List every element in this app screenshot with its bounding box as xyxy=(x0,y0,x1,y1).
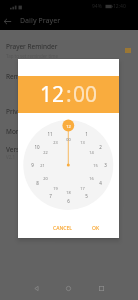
button[interactable]: Prayer Reminder xyxy=(0,39,138,61)
staticText: 23 xyxy=(53,140,58,145)
button[interactable]: Recents xyxy=(85,276,118,300)
staticText: 10 xyxy=(34,144,40,150)
staticText: More Apps xyxy=(6,127,40,136)
staticText: Version xyxy=(6,145,29,154)
staticText: 8 xyxy=(36,180,39,186)
staticText: 1 xyxy=(85,131,88,137)
button[interactable]: 00 xyxy=(72,80,99,109)
staticText: CANCEL xyxy=(53,225,72,232)
button[interactable]: More Apps xyxy=(0,124,138,138)
staticText: 13 xyxy=(80,140,85,145)
staticText: 18 xyxy=(66,190,71,195)
button[interactable]: Reminder Tone xyxy=(0,69,138,83)
staticText: 9 xyxy=(31,162,34,168)
staticText: 00 xyxy=(73,80,98,109)
staticText: 6 xyxy=(67,198,70,204)
staticText: 5 xyxy=(85,193,88,199)
staticText: Reminder Tone xyxy=(6,72,53,81)
staticText: 20 xyxy=(43,176,48,181)
button[interactable]: 12 xyxy=(39,80,66,109)
button[interactable]: Version xyxy=(0,145,138,160)
staticText: 15 xyxy=(93,163,98,168)
staticText: 00 xyxy=(66,137,71,142)
staticText: 22 xyxy=(43,150,48,155)
staticText: 12 xyxy=(40,80,65,109)
button[interactable]: OK xyxy=(88,221,104,235)
staticText: 7 xyxy=(49,193,52,199)
staticText: Privacy Policy xyxy=(6,107,48,116)
staticText: 94% xyxy=(92,3,102,10)
staticText: 11 xyxy=(47,131,53,137)
staticText: 14 xyxy=(89,150,94,155)
staticText: OK xyxy=(92,225,100,232)
staticText: 2 xyxy=(99,144,102,150)
staticText: : xyxy=(66,80,72,109)
staticText: 3 xyxy=(104,162,107,168)
button[interactable]: Privacy Policy xyxy=(0,104,138,118)
staticText: 21 xyxy=(40,163,45,168)
staticText: 19 xyxy=(53,186,58,191)
staticText: 16 xyxy=(89,176,94,181)
staticText: Daily Prayer xyxy=(20,16,61,26)
staticText: 12:40 xyxy=(113,3,126,10)
button[interactable]: Navigate up xyxy=(0,14,15,29)
staticText: 4 xyxy=(99,180,102,186)
button[interactable]: CANCEL xyxy=(49,221,76,235)
staticText: Prayer Reminder xyxy=(6,42,58,51)
staticText: 17 xyxy=(80,186,85,191)
staticText: 12 xyxy=(66,124,71,129)
